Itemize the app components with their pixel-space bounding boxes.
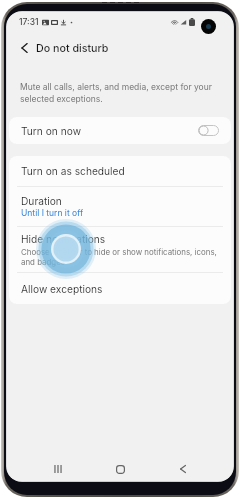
staticText: Do not disturb [36, 42, 109, 55]
button[interactable]: Allow exceptions [9, 273, 231, 304]
staticText: Hide notifications [21, 233, 106, 245]
staticText: Until I turn it off [21, 208, 84, 218]
button[interactable]: Back [171, 457, 195, 481]
button[interactable]: Home [108, 457, 132, 481]
button[interactable]: Recent apps [46, 457, 70, 481]
staticText: Choose whether to hide or show notificat… [21, 247, 219, 267]
staticText: Mute all calls, alerts, and media, excep… [20, 82, 220, 104]
staticText: 17:31 [19, 17, 39, 27]
staticText: Allow exceptions [21, 283, 103, 295]
button[interactable]: Turn on as scheduled [9, 156, 231, 186]
staticText: Duration [21, 195, 62, 207]
button[interactable]: Navigate up [15, 39, 33, 57]
staticText: Turn on as scheduled [21, 165, 125, 177]
button[interactable]: Duration [9, 187, 231, 226]
button[interactable]: Hide notifications [9, 227, 231, 272]
staticText: Turn on now [21, 125, 81, 137]
button[interactable]: Turn on now [9, 117, 231, 144]
